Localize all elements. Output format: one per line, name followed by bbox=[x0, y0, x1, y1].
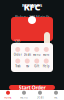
staticText: Menu bbox=[33, 53, 41, 56]
staticText: Gift bbox=[34, 64, 39, 68]
staticText: Menu bbox=[20, 96, 28, 99]
staticText: 120 pts bbox=[14, 38, 20, 49]
staticText: Order bbox=[14, 53, 22, 56]
staticText: Track bbox=[15, 64, 20, 68]
button[interactable]: Deals bbox=[32, 91, 48, 99]
button[interactable]: Me bbox=[48, 91, 64, 99]
button[interactable]: Home bbox=[0, 91, 16, 99]
staticText: Start Order bbox=[18, 84, 45, 91]
staticText: Me bbox=[54, 96, 58, 99]
staticText: Deals bbox=[24, 53, 31, 56]
staticText: More bbox=[43, 53, 50, 56]
staticText: Deals bbox=[36, 96, 43, 99]
staticText: REWARDS bbox=[22, 3, 42, 8]
button[interactable]: Menu bbox=[16, 91, 32, 99]
button[interactable]: Start Order bbox=[9, 85, 55, 90]
staticText: Fav bbox=[26, 64, 29, 68]
staticText: Pickup · 123 Main St bbox=[15, 14, 49, 19]
staticText: Home bbox=[4, 96, 12, 99]
staticText: Help bbox=[43, 64, 50, 68]
staticText: KFC bbox=[23, 1, 40, 13]
